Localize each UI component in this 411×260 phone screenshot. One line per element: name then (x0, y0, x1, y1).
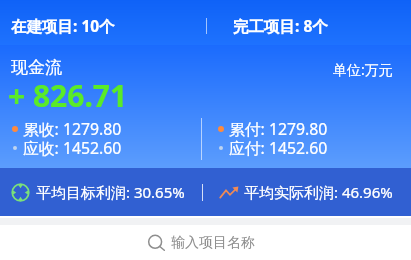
staticText: 完工项目: 8个 (233, 15, 328, 36)
button[interactable]: 平均实际利润 (219, 182, 393, 202)
staticText: 应收: 1452.60 (23, 137, 122, 159)
staticText: 累收: 1279.80 (23, 118, 122, 140)
button[interactable]: 完工项目: 8个 (233, 15, 328, 36)
button[interactable]: 应付: 1452.60 (218, 137, 328, 159)
staticText: 现金流 (11, 57, 62, 78)
staticText: 累付: 1279.80 (229, 118, 328, 140)
staticText: + 826.71 (8, 75, 128, 116)
staticText: 应付: 1452.60 (229, 137, 328, 159)
staticText: 平均实际利润: 46.96% (244, 182, 393, 202)
staticText: 在建项目: 10个 (11, 15, 115, 36)
button[interactable]: 平均目标利润 (11, 182, 202, 202)
other: 平均实际利润 (219, 182, 239, 202)
staticText: 单位:万元 (333, 60, 393, 79)
staticText: 平均目标利润: 30.65% (36, 182, 185, 202)
button[interactable]: 累付: 1279.80 (218, 118, 328, 140)
other: 平均目标利润 (11, 183, 30, 202)
button[interactable]: 应收: 1452.60 (12, 137, 122, 159)
button[interactable]: 累收: 1279.80 (12, 118, 122, 140)
button[interactable]: 在建项目: 10个 (11, 15, 206, 36)
staticText: 输入项目名称 (171, 234, 255, 252)
button[interactable]: 搜索 (0, 225, 411, 260)
other: 搜索 (148, 235, 165, 252)
